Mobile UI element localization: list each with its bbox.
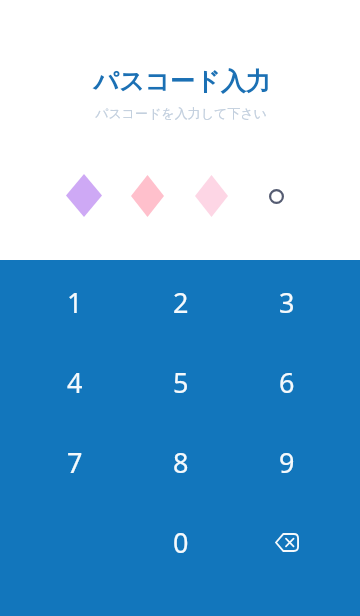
button[interactable]: 9 bbox=[234, 427, 340, 497]
button[interactable]: 3 bbox=[234, 267, 340, 337]
staticText: パスコードを入力して下さい bbox=[1, 105, 360, 121]
staticText: 1 bbox=[67, 284, 83, 321]
button[interactable]: 1 bbox=[22, 267, 128, 337]
staticText: パスコード入力 bbox=[2, 66, 360, 97]
staticText: 5 bbox=[173, 364, 189, 401]
staticText: 9 bbox=[279, 444, 295, 481]
button[interactable]: 5 bbox=[128, 347, 234, 417]
button[interactable]: 8 bbox=[128, 427, 234, 497]
staticText: 3 bbox=[279, 284, 295, 321]
button[interactable]: 6 bbox=[234, 347, 340, 417]
button[interactable]: 7 bbox=[22, 427, 128, 497]
button[interactable]: 4 bbox=[22, 347, 128, 417]
button[interactable]: 2 bbox=[128, 267, 234, 337]
staticText: 8 bbox=[173, 444, 189, 481]
button[interactable]: 0 bbox=[128, 507, 234, 577]
staticText: 6 bbox=[279, 364, 295, 401]
staticText: 7 bbox=[67, 444, 83, 481]
button[interactable]: Delete bbox=[234, 507, 340, 577]
staticText: 4 bbox=[67, 364, 83, 401]
staticText: 0 bbox=[173, 524, 189, 561]
staticText: 2 bbox=[173, 284, 189, 321]
